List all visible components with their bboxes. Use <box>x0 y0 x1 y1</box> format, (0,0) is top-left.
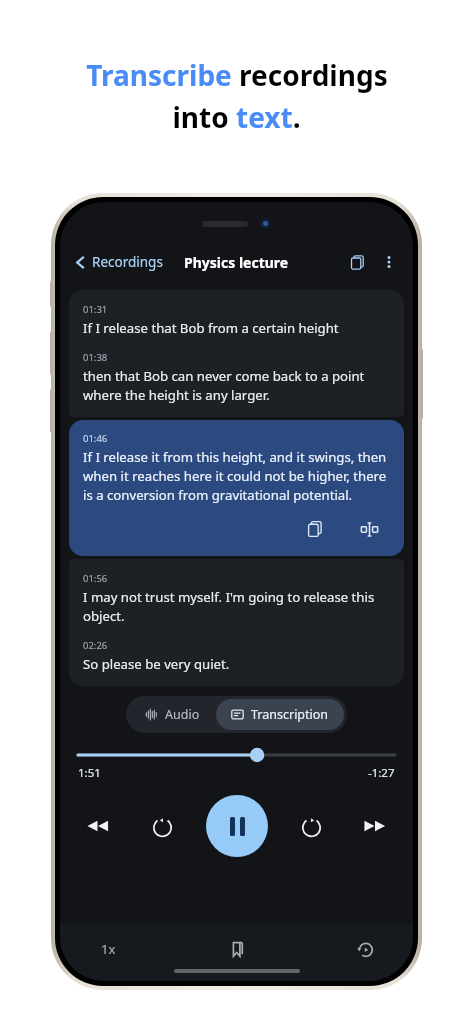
button[interactable]: Audio <box>129 699 216 730</box>
staticText: 01:56 <box>83 572 108 585</box>
staticText: 01:31 <box>83 303 108 316</box>
button[interactable]: 01:46 <box>69 420 404 556</box>
staticText: into text. <box>172 98 301 136</box>
staticText: then that Bob can never come back to a p… <box>83 367 390 404</box>
button[interactable]: Previous <box>78 806 118 846</box>
button[interactable]: Bookmarks <box>219 931 255 967</box>
button[interactable]: Transcription <box>216 699 344 730</box>
button[interactable]: Rewind 15 seconds <box>142 806 182 846</box>
staticText: 02:26 <box>83 639 108 652</box>
staticText: Transcribe recordings <box>86 56 388 94</box>
staticText: So please be very quiet. <box>83 655 230 673</box>
button[interactable]: Next <box>355 806 395 846</box>
button[interactable]: 01:38 <box>83 351 390 404</box>
button[interactable]: Split segment <box>354 514 384 544</box>
staticText: -1:27 <box>368 765 395 781</box>
button[interactable]: 02:26 <box>83 639 390 673</box>
staticText: Transcription <box>251 706 329 723</box>
staticText: 1:51 <box>78 765 101 781</box>
staticText: Physics lecture <box>184 253 289 272</box>
button[interactable]: Forward 15 seconds <box>291 806 331 846</box>
button[interactable]: 01:46 <box>83 432 390 504</box>
button[interactable]: Recordings <box>70 249 166 275</box>
staticText: 01:38 <box>83 351 108 364</box>
staticText: I may not trust myself. I'm going to rel… <box>83 588 390 625</box>
button[interactable]: History <box>347 931 383 967</box>
button[interactable]: 01:31 <box>83 303 390 337</box>
button[interactable]: Copy transcript <box>343 248 371 276</box>
staticText: 01:46 <box>83 432 108 445</box>
button[interactable]: More options <box>375 248 403 276</box>
button[interactable]: 01:56 <box>83 572 390 625</box>
button[interactable]: Playback position <box>78 747 395 763</box>
staticText: 1x <box>101 940 116 958</box>
button[interactable]: Copy segment <box>300 514 330 544</box>
button[interactable]: 1x <box>90 931 126 967</box>
staticText: If I release it from this height, and it… <box>83 448 390 504</box>
staticText: Audio <box>165 706 200 723</box>
button[interactable]: Pause <box>206 795 268 857</box>
staticText: Recordings <box>92 253 163 271</box>
staticText: If I release that Bob from a certain hei… <box>83 319 339 337</box>
